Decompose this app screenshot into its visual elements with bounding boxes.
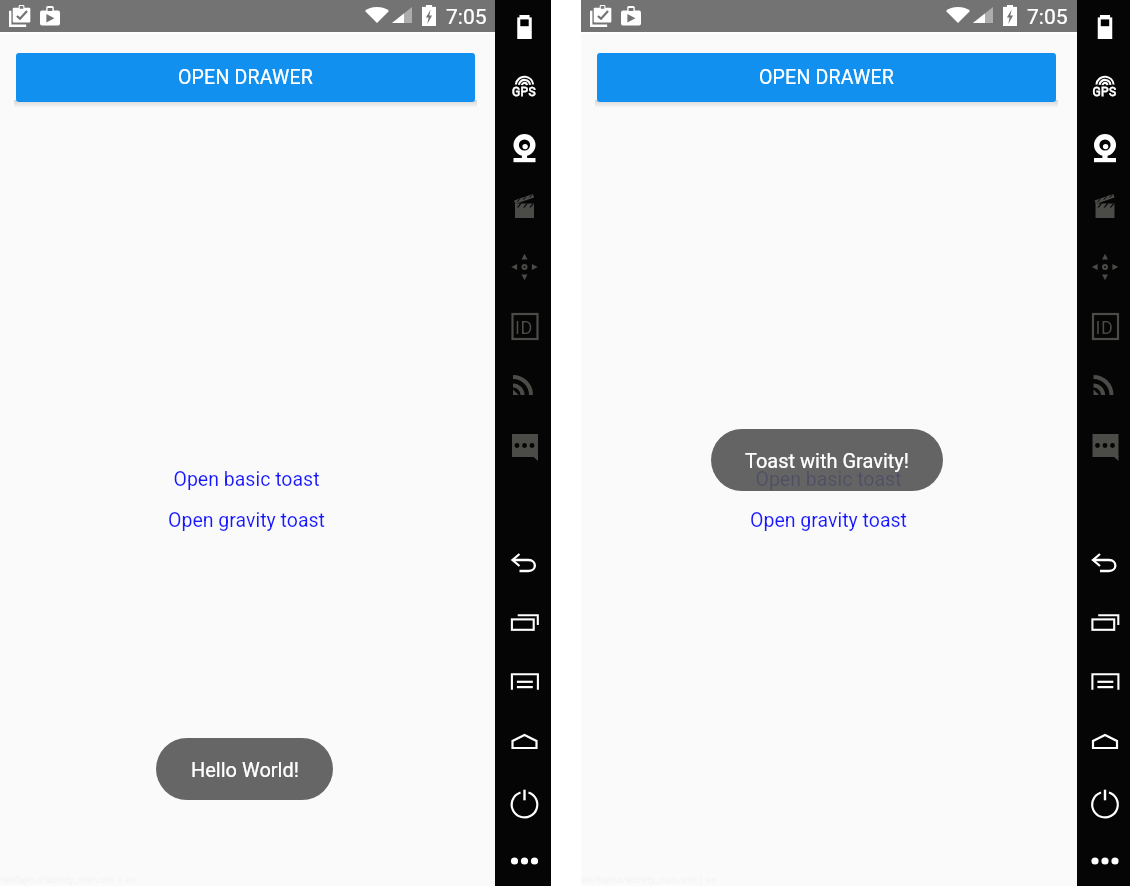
- button[interactable]: Power: [1077, 775, 1130, 831]
- button[interactable]: Webcam: [495, 119, 551, 175]
- staticText: ID: [1078, 317, 1130, 338]
- button[interactable]: Battery: [495, 0, 551, 55]
- button[interactable]: Location / GPS: [495, 58, 551, 114]
- button[interactable]: Power: [495, 775, 551, 831]
- button[interactable]: Back: [495, 534, 551, 590]
- staticText: Open gravity toast: [168, 509, 325, 531]
- button[interactable]: Device ID: [495, 299, 551, 355]
- staticText: 7:05: [1027, 5, 1068, 30]
- button[interactable]: Directional pad: [495, 239, 551, 295]
- button[interactable]: Cellular: [495, 358, 551, 414]
- button[interactable]: OPEN DRAWER: [16, 53, 475, 102]
- staticText: GPS: [1078, 85, 1130, 99]
- staticText: Open gravity toast: [750, 509, 907, 531]
- button[interactable]: More: [495, 833, 551, 886]
- staticText: 7:05: [446, 5, 487, 30]
- button[interactable]: Back: [1077, 534, 1130, 590]
- button[interactable]: Device ID: [1077, 299, 1130, 355]
- button[interactable]: Directional pad: [1077, 239, 1130, 295]
- button[interactable]: Overview: [495, 654, 551, 710]
- staticText: Toast with Gravity!: [745, 449, 909, 472]
- button[interactable]: Open basic toast: [0, 468, 494, 490]
- button[interactable]: Location / GPS: [1077, 58, 1130, 114]
- staticText: ID: [496, 317, 552, 338]
- button[interactable]: Overview: [1077, 654, 1130, 710]
- button[interactable]: OPEN DRAWER: [597, 53, 1056, 102]
- staticText: OPEN DRAWER: [759, 66, 895, 89]
- button[interactable]: Battery: [1077, 0, 1130, 55]
- button[interactable]: Record screen: [495, 179, 551, 235]
- button[interactable]: Open gravity toast: [580, 509, 1076, 531]
- staticText: Hello World!: [191, 758, 299, 781]
- button[interactable]: More: [1077, 833, 1130, 886]
- button[interactable]: Rotate: [1077, 594, 1130, 650]
- button[interactable]: Open gravity toast: [0, 509, 494, 531]
- button[interactable]: Home: [495, 714, 551, 770]
- button[interactable]: Record screen: [1077, 179, 1130, 235]
- button[interactable]: Messages: [495, 418, 551, 474]
- staticText: Open basic toast: [173, 468, 320, 490]
- button[interactable]: Webcam: [1077, 119, 1130, 175]
- button[interactable]: Cellular: [1077, 358, 1130, 414]
- button[interactable]: Home: [1077, 714, 1130, 770]
- staticText: Open basic toast: [755, 468, 902, 490]
- button[interactable]: Rotate: [495, 594, 551, 650]
- button[interactable]: Messages: [1077, 418, 1130, 474]
- button[interactable]: Open basic toast: [580, 468, 1076, 490]
- staticText: OPEN DRAWER: [178, 66, 314, 89]
- staticText: GPS: [496, 85, 552, 99]
